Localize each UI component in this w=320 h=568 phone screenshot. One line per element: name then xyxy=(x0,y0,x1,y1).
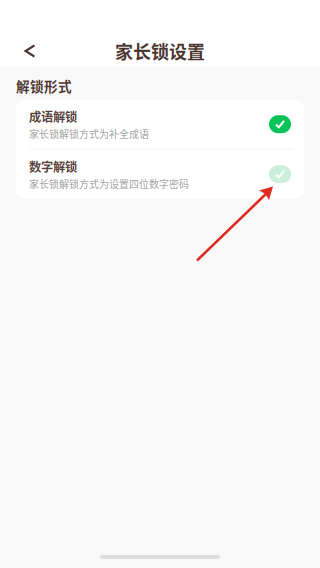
staticText: 家长锁解锁方式为设置四位数字密码 xyxy=(29,176,189,191)
button[interactable]: 数字解锁 xyxy=(16,150,304,199)
button[interactable]: Back xyxy=(0,31,52,71)
staticText: 成语解锁 xyxy=(29,108,77,125)
staticText: 解锁形式 xyxy=(16,76,72,96)
button[interactable]: 成语解锁 xyxy=(16,100,304,149)
staticText: 家长锁设置 xyxy=(115,38,205,64)
staticText: 数字解锁 xyxy=(29,158,77,175)
staticText: 家长锁解锁方式为补全成语 xyxy=(29,126,149,141)
